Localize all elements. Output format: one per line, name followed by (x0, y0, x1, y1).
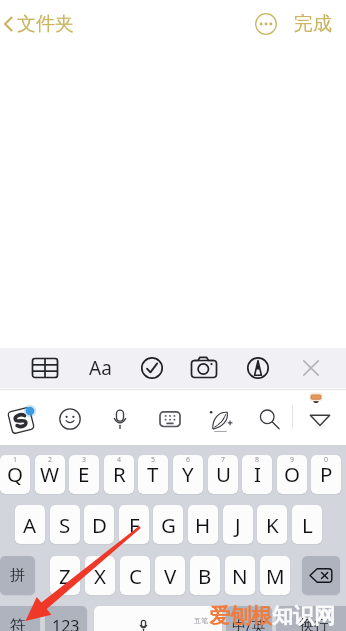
button[interactable]: Sogou input (0, 397, 43, 441)
staticText: 爱刨根 (209, 603, 272, 629)
button[interactable]: 2 (35, 455, 65, 494)
staticText: 3 (82, 455, 87, 465)
button[interactable]: 4 (104, 455, 134, 494)
button[interactable]: G (153, 505, 183, 544)
button[interactable]: Numbers (45, 606, 87, 631)
staticText: 文件夹 (17, 12, 74, 36)
staticText: T (147, 460, 159, 488)
button[interactable]: S (50, 505, 80, 544)
staticText: Y (182, 460, 194, 488)
staticText: 5 (151, 455, 156, 465)
button[interactable]: 5 (138, 455, 168, 494)
staticText: K (266, 511, 279, 539)
staticText: 中/英 (232, 616, 266, 631)
staticText: 符 (10, 616, 26, 631)
staticText: D (92, 511, 107, 539)
button[interactable]: Table (28, 348, 62, 388)
staticText: 换行 (299, 616, 329, 631)
button[interactable]: C (120, 556, 150, 595)
button[interactable]: 6 (173, 455, 203, 494)
staticText: 2 (48, 455, 53, 465)
button[interactable]: Close (294, 348, 328, 388)
button[interactable]: Symbols (0, 606, 40, 631)
button[interactable]: Chinese English toggle (226, 606, 272, 631)
staticText: H (195, 511, 211, 539)
button[interactable]: M (260, 556, 290, 595)
staticText: 8 (255, 455, 260, 465)
button[interactable]: More options (252, 10, 280, 38)
button[interactable]: 文件夹 (2, 10, 74, 38)
staticText: X (94, 562, 107, 590)
staticText: 6 (186, 455, 191, 465)
staticText: G (161, 511, 176, 539)
button[interactable]: V (155, 556, 185, 595)
button[interactable]: 9 (277, 455, 307, 494)
staticText: Q (7, 460, 24, 488)
staticText: L (302, 511, 313, 539)
button[interactable]: Pinyin mode (0, 556, 35, 595)
staticText: R (113, 460, 126, 488)
staticText: W (40, 460, 60, 488)
staticText: 4 (117, 455, 122, 465)
button[interactable]: Z (50, 556, 80, 595)
staticText: V (164, 562, 177, 590)
button[interactable]: Markup (241, 348, 275, 388)
button[interactable]: Handwriting (198, 397, 242, 441)
staticText: C (129, 562, 142, 590)
button[interactable]: 1 (0, 455, 30, 494)
button[interactable]: Space (94, 606, 222, 631)
staticText: A (23, 511, 37, 539)
staticText: 拼 (10, 566, 25, 585)
button[interactable]: 3 (69, 455, 99, 494)
staticText: 0 (324, 455, 329, 465)
button[interactable]: Voice input (98, 397, 142, 441)
staticText: N (232, 562, 248, 590)
button[interactable]: Backspace (302, 556, 340, 595)
button[interactable]: 7 (208, 455, 238, 494)
staticText: 完成 (294, 12, 332, 36)
staticText: Z (59, 562, 71, 590)
button[interactable]: D (84, 505, 114, 544)
button[interactable]: H (188, 505, 218, 544)
staticText: I (254, 460, 261, 488)
staticText: F (129, 511, 140, 539)
staticText: 9 (290, 455, 295, 465)
button[interactable]: N (225, 556, 255, 595)
staticText: Aa (89, 355, 112, 381)
button[interactable]: 完成 (294, 10, 332, 38)
button[interactable]: 8 (242, 455, 272, 494)
button[interactable]: A (15, 505, 45, 544)
button[interactable]: Camera (187, 348, 221, 388)
staticText: U (216, 460, 231, 488)
button[interactable]: Keyboard layout (148, 397, 192, 441)
staticText: 知识网 (272, 603, 335, 629)
staticText: 1 (13, 455, 18, 465)
button[interactable]: X (85, 556, 115, 595)
staticText: S (59, 511, 71, 539)
staticText: B (198, 562, 212, 590)
staticText: E (78, 460, 90, 488)
staticText: P (320, 460, 333, 488)
button[interactable]: Aa (83, 348, 117, 388)
button[interactable]: L (292, 505, 322, 544)
staticText: 7 (221, 455, 226, 465)
button[interactable]: F (119, 505, 149, 544)
button[interactable]: Emoji (48, 397, 92, 441)
staticText: 123 (52, 615, 80, 631)
button[interactable]: B (190, 556, 220, 595)
button[interactable]: K (257, 505, 287, 544)
button[interactable]: Hide keyboard (298, 397, 342, 441)
button[interactable]: J (223, 505, 253, 544)
staticText: 五笔 (194, 616, 208, 625)
button[interactable]: Return (276, 606, 346, 631)
button[interactable]: 0 (311, 455, 341, 494)
staticText: J (235, 511, 241, 539)
staticText: O (284, 460, 301, 488)
staticText: M (266, 562, 285, 590)
button[interactable]: Search (247, 397, 291, 441)
button[interactable]: Checklist (135, 348, 169, 388)
